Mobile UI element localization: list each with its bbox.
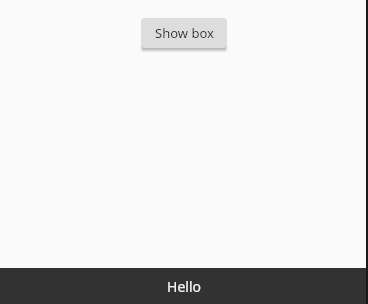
staticText: Show box xyxy=(155,24,214,42)
button[interactable]: Show box xyxy=(142,18,226,48)
button[interactable]: Hello xyxy=(0,268,368,304)
staticText: Hello xyxy=(167,277,201,296)
